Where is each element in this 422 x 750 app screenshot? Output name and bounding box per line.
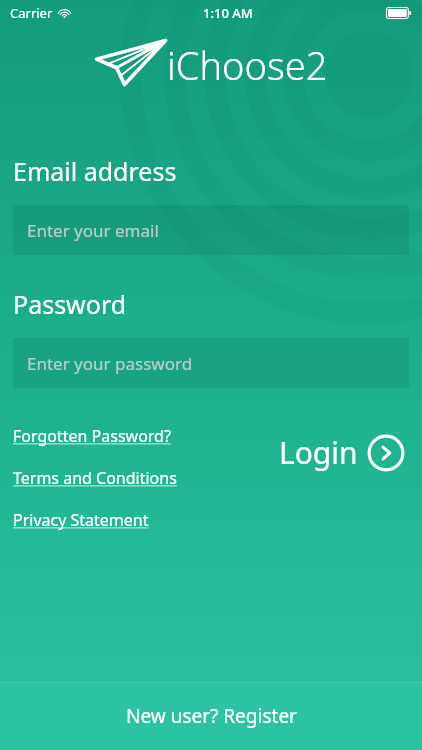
staticText: iChoose2 <box>167 39 328 91</box>
staticText: Login <box>279 432 358 473</box>
staticText: Enter your email <box>27 219 159 242</box>
staticText: Password <box>13 287 127 321</box>
button[interactable]: Privacy Statement <box>13 506 149 534</box>
other: Login <box>367 434 405 472</box>
staticText: Carrier <box>10 4 53 22</box>
button[interactable]: Enter your password <box>13 338 409 388</box>
staticText: Terms and Conditions <box>13 467 177 489</box>
staticText: Privacy Statement <box>13 509 149 531</box>
button[interactable]: Terms and Conditions <box>13 464 177 492</box>
staticText: New user? Register <box>126 703 297 729</box>
button[interactable]: Login <box>275 428 409 477</box>
staticText: Email address <box>13 154 177 188</box>
staticText: Forgotten Password? <box>13 425 171 447</box>
staticText: Enter your password <box>27 352 193 375</box>
button[interactable]: Forgotten Password? <box>13 422 171 450</box>
button[interactable]: Enter your email <box>13 205 409 255</box>
button[interactable]: New user? Register <box>0 682 422 750</box>
staticText: 1:10 AM <box>203 4 253 22</box>
